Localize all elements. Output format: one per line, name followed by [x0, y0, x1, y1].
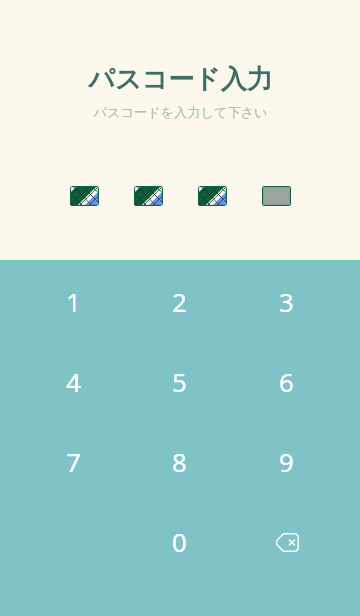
button[interactable]: 0: [126, 501, 233, 581]
staticText: 2: [172, 284, 187, 319]
button[interactable]: 2: [126, 261, 233, 341]
button[interactable]: 6: [233, 341, 340, 421]
staticText: 3: [279, 284, 294, 319]
other: Backspace: [274, 530, 299, 553]
staticText: 8: [172, 444, 187, 479]
button[interactable]: 5: [126, 341, 233, 421]
staticText: 1: [66, 284, 81, 319]
button[interactable]: 1: [20, 261, 126, 341]
staticText: パスコード入力: [88, 63, 273, 96]
staticText: パスコードを入力して下さい: [93, 104, 268, 121]
button[interactable]: Backspace: [233, 501, 340, 581]
button[interactable]: 4: [20, 341, 126, 421]
staticText: 9: [279, 444, 294, 479]
staticText: 7: [66, 444, 81, 479]
staticText: 6: [279, 364, 294, 399]
staticText: 4: [66, 364, 81, 399]
staticText: 5: [172, 364, 187, 399]
staticText: 0: [172, 524, 187, 559]
button[interactable]: 9: [233, 421, 340, 501]
button[interactable]: 8: [126, 421, 233, 501]
button[interactable]: 3: [233, 261, 340, 341]
button[interactable]: 7: [20, 421, 126, 501]
